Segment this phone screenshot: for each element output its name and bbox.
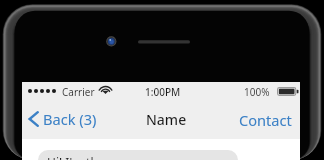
staticText: Back (3) — [43, 109, 97, 129]
button[interactable]: Back (3) — [25, 105, 101, 133]
staticText: Hi! I'm the new manager, are you availab… — [47, 154, 238, 160]
staticText: Carrier — [62, 85, 95, 99]
staticText: 100% — [244, 85, 270, 99]
button[interactable]: Hi! I'm the new manager, are you availab… — [38, 150, 238, 160]
staticText: 1:00PM — [145, 85, 181, 99]
button[interactable]: Contact — [236, 107, 295, 133]
staticText: Name — [146, 110, 187, 129]
staticText: Contact — [239, 110, 292, 130]
